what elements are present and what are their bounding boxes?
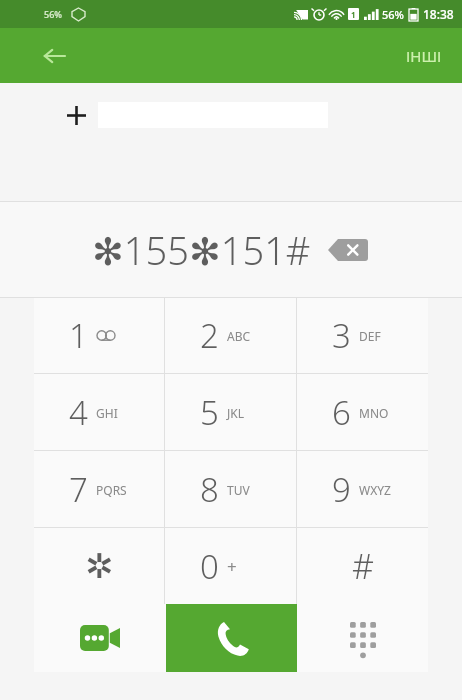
staticText: ABC [227, 328, 251, 344]
staticText: 0 [200, 544, 219, 589]
button[interactable]: Call [166, 604, 297, 672]
staticText: PQRS [96, 482, 127, 498]
staticText: 5 [200, 390, 219, 435]
button[interactable]: Keypad [297, 604, 428, 672]
button[interactable]: Backspace [325, 233, 371, 267]
staticText: 2 [200, 313, 219, 358]
button[interactable]: 7 [34, 451, 164, 527]
staticText: ✲ [85, 546, 114, 586]
staticText: 18:38 [423, 6, 454, 22]
button[interactable]: ✲ [34, 528, 164, 604]
staticText: # [352, 543, 374, 589]
staticText: JKL [227, 405, 244, 421]
button[interactable]: 8 [165, 451, 296, 527]
staticText: 7 [69, 467, 88, 512]
staticText: 6 [332, 390, 351, 435]
staticText: TUV [227, 482, 250, 498]
staticText: MNO [359, 405, 389, 421]
staticText: + [227, 555, 237, 578]
staticText: WXYZ [359, 482, 391, 498]
staticText: 56% [382, 7, 404, 22]
button[interactable] [0, 93, 462, 137]
button[interactable]: Back [34, 36, 74, 76]
button[interactable]: # [297, 528, 428, 604]
staticText: 8 [200, 467, 219, 512]
staticText: GHI [96, 405, 118, 421]
button[interactable]: 2 [165, 298, 296, 373]
button[interactable]: 4 [34, 374, 164, 450]
staticText: 9 [332, 467, 351, 512]
staticText: ІНШІ [406, 46, 442, 66]
staticText: 56% [44, 8, 62, 20]
staticText: 3 [332, 313, 351, 358]
staticText: 4 [69, 390, 88, 435]
button[interactable]: Video call [34, 604, 166, 672]
button[interactable]: 5 [165, 374, 296, 450]
staticText: DEF [359, 328, 381, 344]
button[interactable]: 0 [165, 528, 296, 604]
staticText: 1 [69, 313, 88, 358]
button[interactable]: 3 [297, 298, 428, 373]
button[interactable]: 1 [34, 298, 164, 373]
button[interactable]: 6 [297, 374, 428, 450]
staticText: ✻155✻151# [92, 224, 311, 276]
staticText: 1 [351, 9, 356, 20]
button[interactable]: ІНШІ [400, 40, 448, 72]
button[interactable]: 9 [297, 451, 428, 527]
